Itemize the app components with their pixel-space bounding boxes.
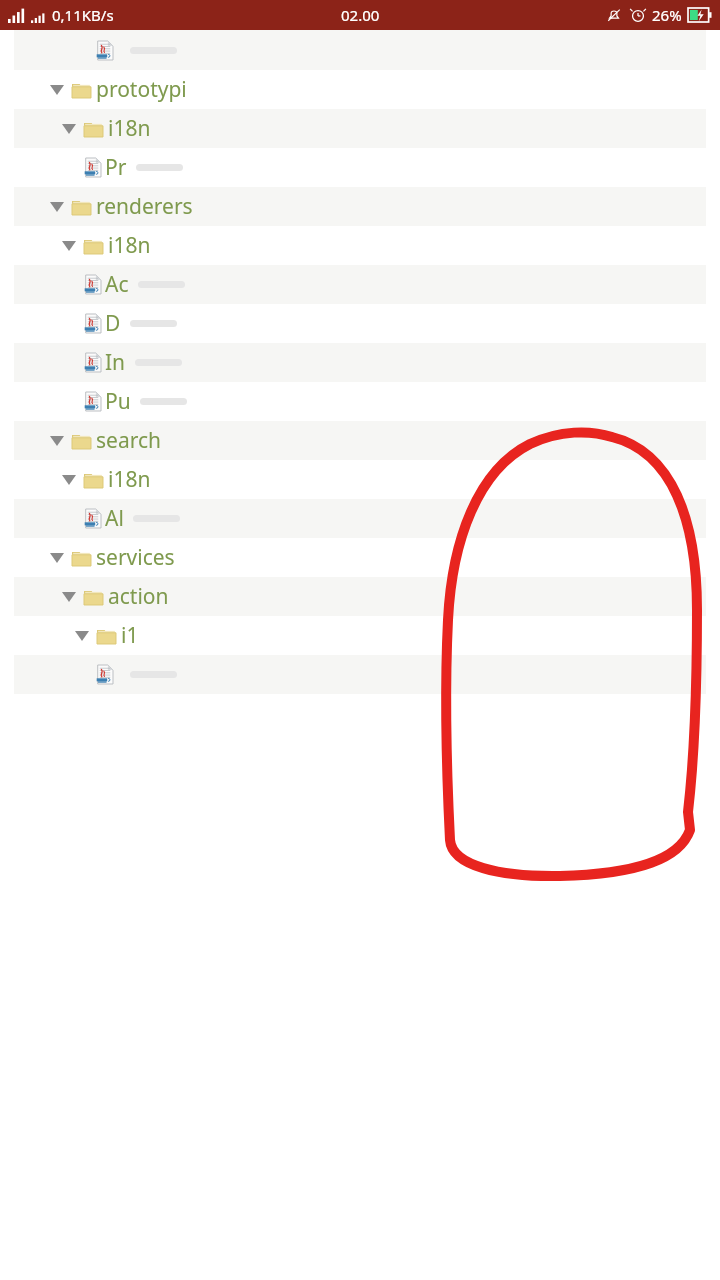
button[interactable]: Pu [0,382,720,421]
staticText: services [96,543,175,572]
staticText: action [108,582,169,611]
button[interactable] [0,30,720,70]
staticText: 0,11KB/s [52,5,114,25]
button[interactable]: i18n [0,226,720,265]
staticText: i18n [108,465,151,494]
staticText: i18n [108,114,151,143]
button[interactable]: action [0,577,720,616]
button[interactable]: D [0,304,720,343]
button[interactable] [0,655,720,694]
button[interactable]: prototypi [0,70,720,109]
staticText: i18n [108,231,151,260]
staticText: i1 [121,621,139,650]
button[interactable]: services [0,538,720,577]
button[interactable]: Al [0,499,720,538]
staticText: Pu [105,387,131,416]
button[interactable]: i1 [0,616,720,655]
staticText: In [105,348,126,377]
staticText: D [105,309,121,338]
staticText: search [96,426,161,455]
staticText: Al [105,504,124,533]
button[interactable]: search [0,421,720,460]
button[interactable]: Pr [0,148,720,187]
button[interactable]: i18n [0,109,720,148]
button[interactable]: renderers [0,187,720,226]
staticText: 26% [652,5,682,25]
staticText: Pr [105,153,127,182]
button[interactable]: Ac [0,265,720,304]
staticText: renderers [96,192,193,221]
staticText: Ac [105,270,129,299]
staticText: prototypi [96,75,187,104]
button[interactable]: In [0,343,720,382]
button[interactable]: i18n [0,460,720,499]
staticText: 02.00 [341,5,380,25]
